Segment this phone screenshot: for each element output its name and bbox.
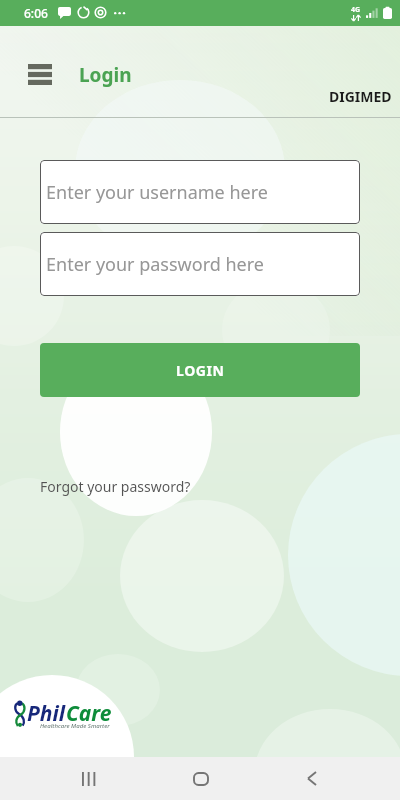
staticText: 4G [351, 5, 361, 15]
button[interactable]: Enter your password here [40, 232, 360, 296]
staticText: 6:06 [24, 5, 48, 21]
button[interactable]: Back [288, 757, 336, 800]
button[interactable]: Enter your username here [40, 160, 360, 224]
staticText: Healthcare Made Smarter [40, 722, 110, 730]
button[interactable]: LOGIN [40, 343, 360, 397]
button[interactable]: Forgot your password? [40, 477, 191, 496]
button[interactable]: Open navigation menu [20, 56, 60, 92]
staticText: DIGIMED [329, 87, 392, 106]
staticText: Enter your password here [46, 252, 264, 277]
staticText: Forgot your password? [40, 477, 191, 496]
button[interactable]: Recent apps [65, 757, 113, 800]
staticText: Login [79, 62, 132, 88]
button[interactable]: Home [177, 757, 225, 800]
staticText: LOGIN [176, 361, 225, 380]
staticText: Enter your username here [46, 180, 268, 205]
staticText: Care [66, 699, 112, 728]
staticText: Phil [27, 699, 66, 728]
